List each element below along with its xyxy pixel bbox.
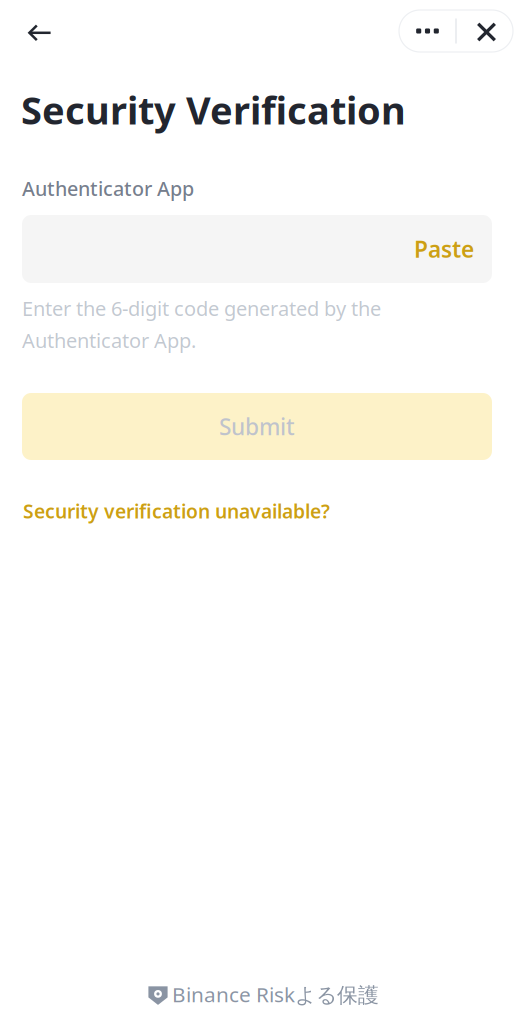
staticText: Security verification unavailable? [23, 498, 330, 524]
button[interactable]: Back [16, 11, 64, 55]
staticText: Authenticator App [22, 175, 194, 202]
button[interactable]: Submit [22, 393, 492, 460]
button[interactable]: More [399, 10, 455, 52]
staticText: Binance Riskよる保護 [172, 980, 379, 1008]
button[interactable]: Paste [396, 215, 492, 283]
button[interactable]: Close [456, 10, 512, 52]
staticText: Paste [414, 234, 474, 264]
staticText: Authenticator App. [22, 327, 196, 354]
staticText: Submit [219, 411, 295, 441]
staticText: Security Verification [21, 84, 406, 136]
button[interactable]: Security verification unavailable? [22, 493, 331, 529]
staticText: Enter the 6-digit code generated by the [22, 295, 381, 322]
